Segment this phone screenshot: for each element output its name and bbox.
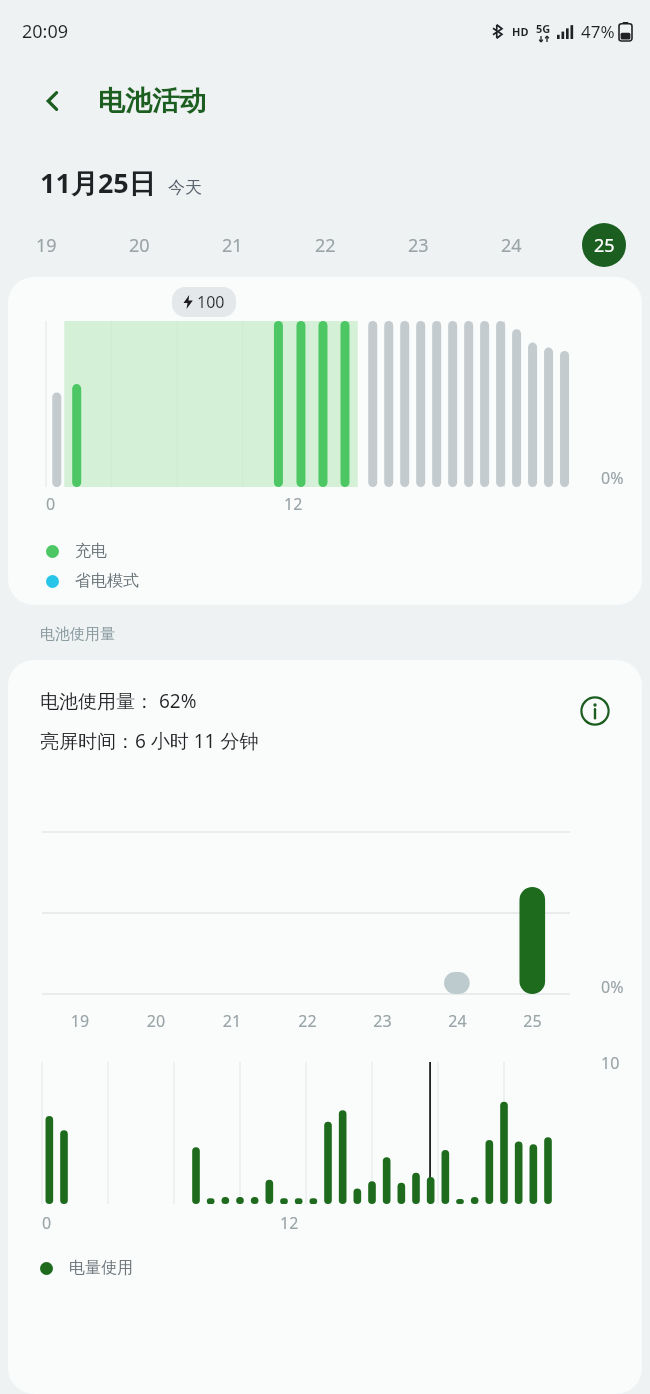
button[interactable]: Back bbox=[30, 78, 76, 124]
staticText: 24 bbox=[501, 233, 522, 258]
staticText: 12 bbox=[280, 1212, 299, 1234]
staticText: 今天 bbox=[168, 177, 202, 198]
staticText: 25 bbox=[495, 1010, 570, 1032]
staticText: HD bbox=[512, 24, 529, 39]
button[interactable]: Info bbox=[574, 690, 616, 732]
staticText: 电池活动 bbox=[98, 84, 206, 118]
staticText: 12 bbox=[284, 493, 303, 515]
staticText: 23 bbox=[345, 1010, 420, 1032]
staticText: 电量使用 bbox=[69, 1258, 133, 1278]
button[interactable]: 21 bbox=[210, 223, 254, 267]
staticText: 22 bbox=[270, 1010, 345, 1032]
staticText: 21 bbox=[222, 233, 243, 258]
button[interactable]: 20 bbox=[117, 223, 161, 267]
staticText: 20:09 bbox=[22, 19, 69, 44]
staticText: 21 bbox=[194, 1010, 270, 1032]
button[interactable]: 22 bbox=[303, 223, 347, 267]
button[interactable]: 100 bbox=[8, 277, 642, 605]
staticText: 22 bbox=[315, 233, 336, 258]
staticText: 5G bbox=[536, 21, 551, 36]
button[interactable]: 23 bbox=[396, 223, 440, 267]
staticText: 0 bbox=[46, 493, 56, 515]
button[interactable]: 25 bbox=[582, 223, 626, 267]
staticText: 0% bbox=[601, 976, 624, 998]
staticText: 电池使用量 bbox=[40, 625, 115, 644]
staticText: 电池使用量： 62% bbox=[40, 688, 197, 714]
staticText: 25 bbox=[594, 233, 615, 258]
staticText: 亮屏时间：6 小时 11 分钟 bbox=[40, 728, 259, 754]
staticText: 11月25日 bbox=[40, 164, 156, 201]
staticText: 0 bbox=[42, 1212, 52, 1234]
staticText: 0% bbox=[601, 467, 624, 489]
staticText: 19 bbox=[36, 233, 57, 258]
staticText: 19 bbox=[42, 1010, 118, 1032]
staticText: 充电 bbox=[75, 541, 107, 561]
staticText: 省电模式 bbox=[75, 571, 139, 591]
staticText: 100 bbox=[197, 291, 225, 313]
staticText: 24 bbox=[420, 1010, 495, 1032]
staticText: 20 bbox=[118, 1010, 194, 1032]
staticText: 10 bbox=[601, 1052, 620, 1074]
button[interactable]: 19 bbox=[24, 223, 68, 267]
staticText: 47% bbox=[581, 20, 615, 43]
staticText: 23 bbox=[408, 233, 429, 258]
staticText: 20 bbox=[129, 233, 150, 258]
button[interactable]: 24 bbox=[489, 223, 533, 267]
